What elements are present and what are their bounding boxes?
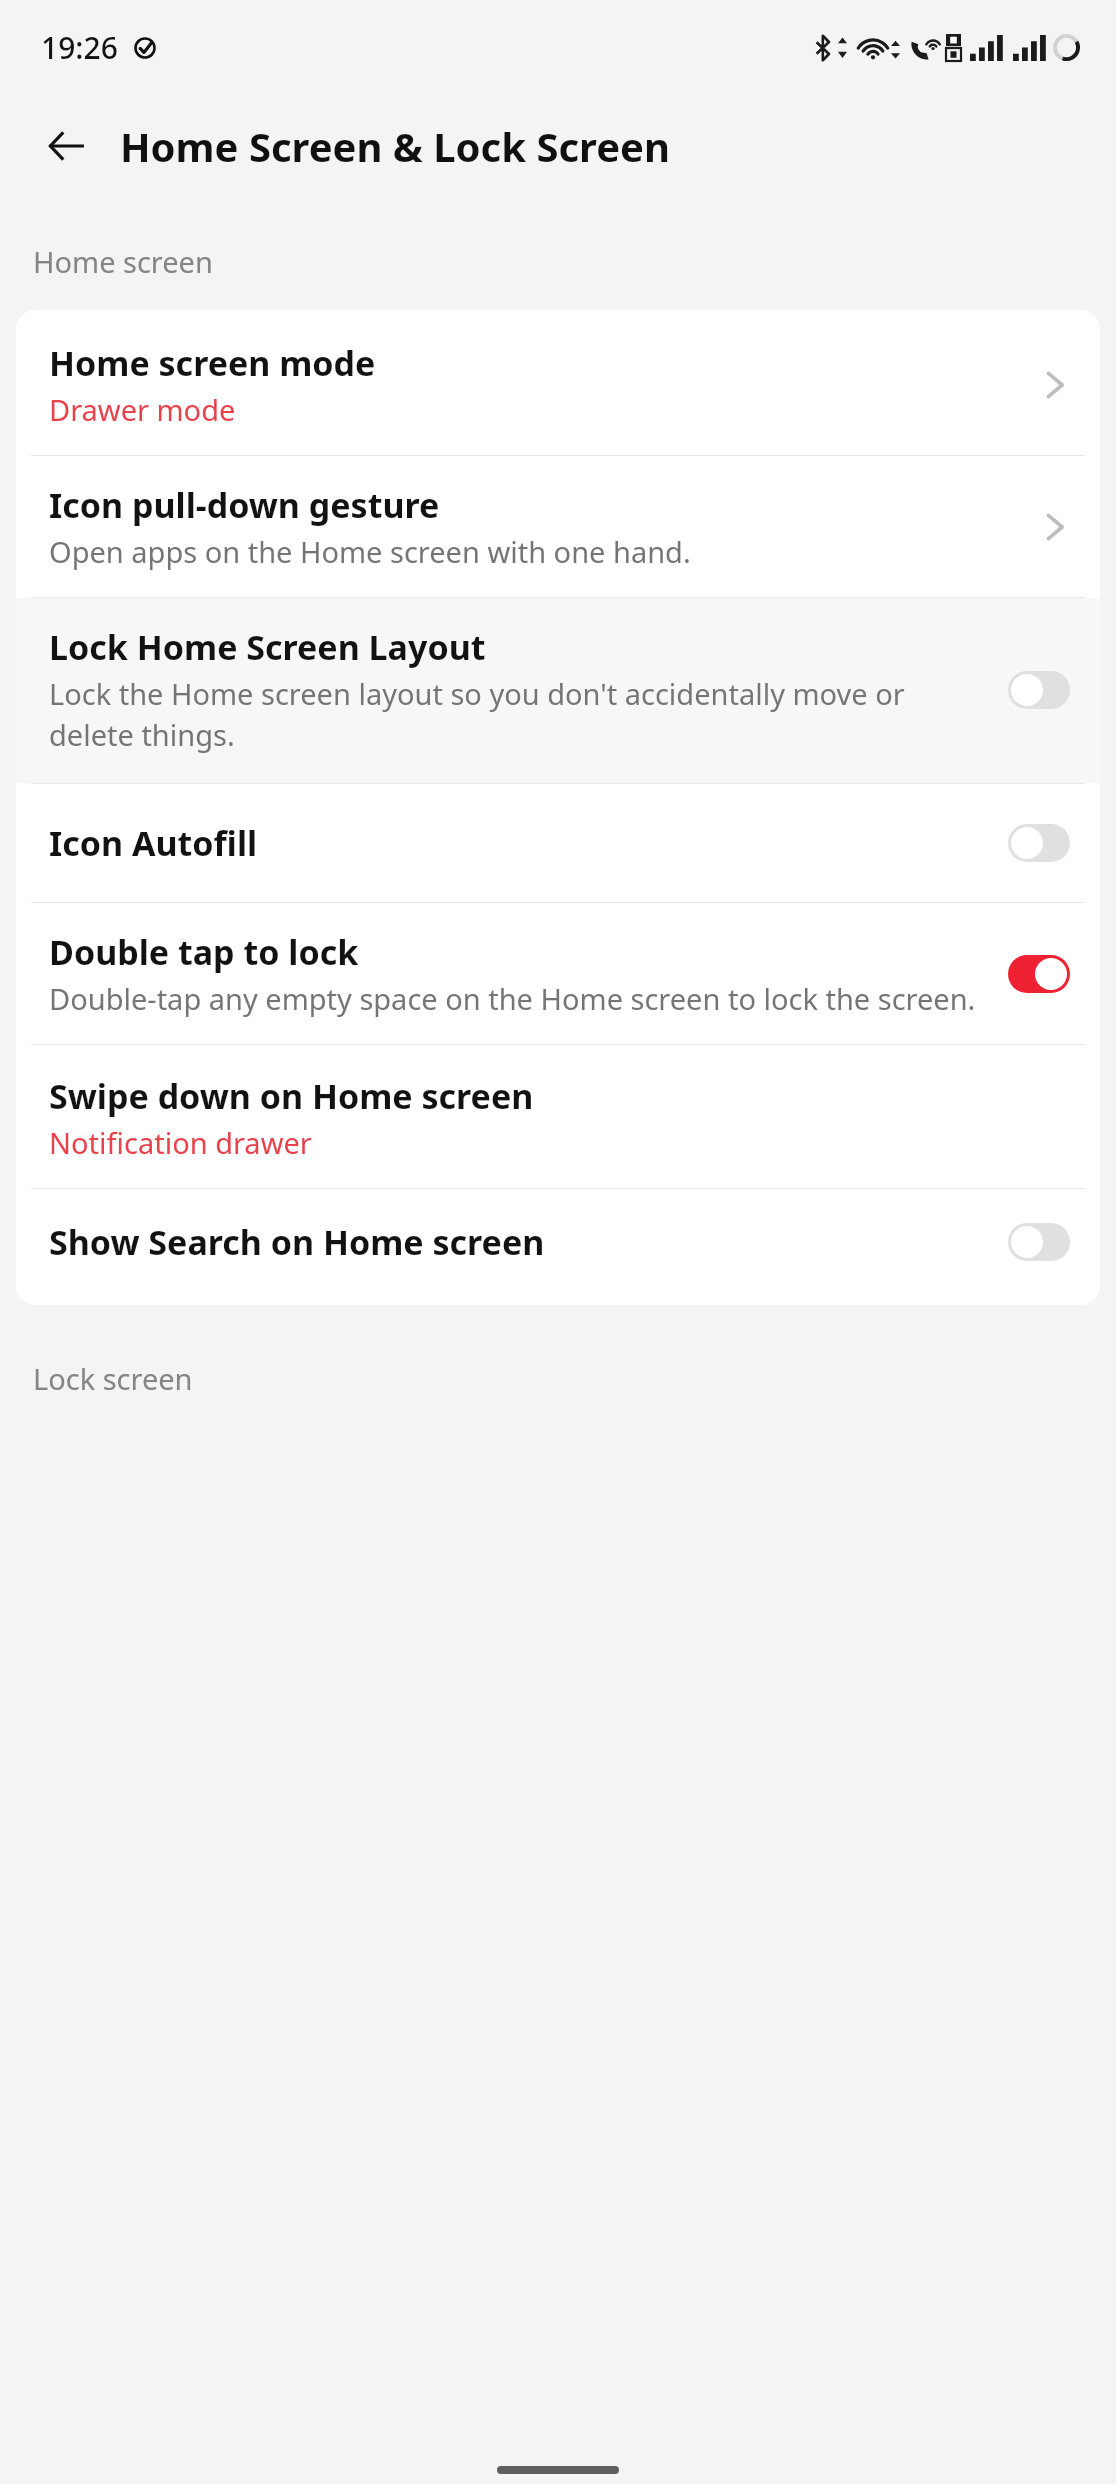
staticText: Icon Autofill — [49, 820, 258, 866]
staticText: Lock screen — [33, 1359, 193, 1398]
button[interactable]: Icon pull-down gesture — [16, 456, 1100, 597]
button[interactable]: Double tap to lock — [16, 903, 1100, 1044]
staticText: Drawer mode — [49, 390, 236, 429]
staticText: Home Screen & Lock Screen — [120, 119, 670, 173]
staticText: Open apps on the Home screen with one ha… — [49, 532, 691, 571]
staticText: Double-tap any empty space on the Home s… — [49, 979, 976, 1018]
button[interactable]: Home screen mode — [16, 310, 1100, 455]
button[interactable]: Back — [38, 118, 94, 174]
staticText: Lock the Home screen layout so you don't… — [49, 674, 990, 755]
staticText: 19:26 — [41, 27, 118, 68]
button[interactable]: Off — [1008, 671, 1070, 709]
button[interactable]: Icon Autofill — [16, 784, 1100, 902]
staticText: Lock Home Screen Layout — [49, 624, 486, 670]
button[interactable]: Off — [1008, 1223, 1070, 1261]
button[interactable]: Swipe down on Home screen — [16, 1045, 1100, 1188]
staticText: Home screen — [33, 242, 213, 281]
staticText: Show Search on Home screen — [49, 1219, 545, 1265]
staticText: Double tap to lock — [49, 929, 359, 975]
staticText: Swipe down on Home screen — [49, 1073, 534, 1119]
button[interactable]: Off — [1008, 824, 1070, 862]
staticText: Home screen mode — [49, 340, 376, 386]
button[interactable]: On — [1008, 955, 1070, 993]
staticText: Icon pull-down gesture — [49, 482, 440, 528]
button[interactable]: Lock Home Screen Layout — [16, 598, 1100, 783]
button[interactable]: Show Search on Home screen — [16, 1189, 1100, 1305]
staticText: Notification drawer — [49, 1123, 312, 1162]
